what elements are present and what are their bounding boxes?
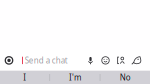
- button[interactable]: Emoji: [98, 50, 113, 70]
- staticText: I'm: [69, 72, 81, 83]
- staticText: I: [23, 72, 26, 83]
- button[interactable]: No: [101, 71, 150, 84]
- button[interactable]: I'm: [50, 71, 100, 84]
- button[interactable]: Rockets: [129, 50, 144, 70]
- button[interactable]: Voice note: [83, 50, 98, 70]
- staticText: No: [120, 72, 131, 83]
- staticText: Send a chat: [25, 55, 68, 66]
- button[interactable]: Open camera: [0, 50, 18, 70]
- button[interactable]: Send a chat: [23, 50, 83, 70]
- button[interactable]: I: [0, 71, 49, 84]
- button[interactable]: Stickers: [113, 50, 129, 70]
